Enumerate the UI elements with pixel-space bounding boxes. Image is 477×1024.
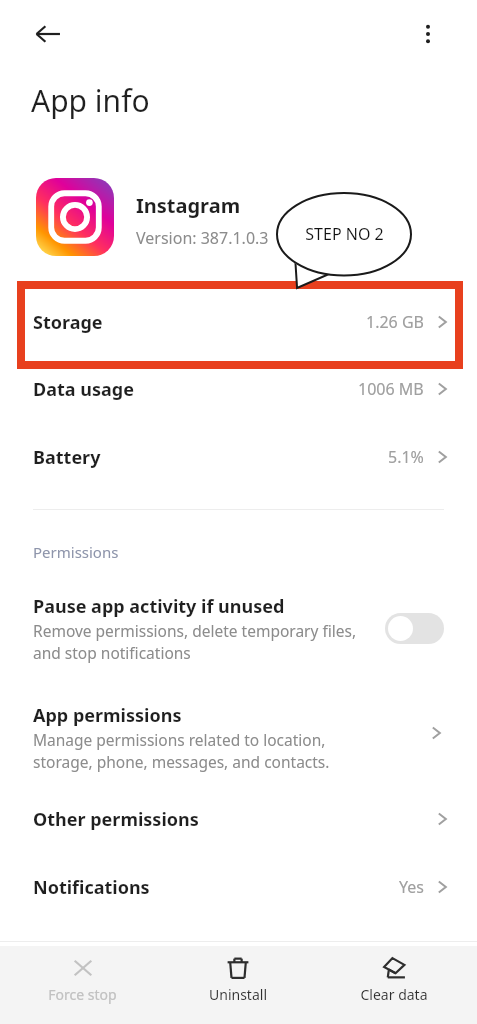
staticText: Force stop <box>48 985 117 1004</box>
staticText: App permissions <box>33 703 182 728</box>
staticText: 5.1% <box>388 446 424 468</box>
staticText: storage, phone, messages, and contacts. <box>33 751 330 772</box>
button[interactable]: Clear data <box>324 946 464 1024</box>
staticText: Manage permissions related to location, <box>33 729 326 750</box>
button[interactable]: Other permissions <box>0 794 477 844</box>
staticText: Yes <box>399 876 424 898</box>
staticText: STEP NO 2 <box>305 223 384 245</box>
staticText: Instagram <box>136 192 241 219</box>
staticText: Data usage <box>33 377 134 402</box>
button[interactable]: Pause app activity if unused <box>0 590 477 670</box>
button[interactable]: Uninstall <box>168 946 308 1024</box>
button[interactable]: App permissions <box>0 700 477 784</box>
staticText: Version: 387.1.0.3 <box>136 227 269 249</box>
button[interactable]: Storage <box>0 297 477 347</box>
staticText: Remove permissions, delete temporary fil… <box>33 620 357 641</box>
staticText: Storage <box>33 310 103 335</box>
button[interactable]: Notifications <box>0 862 477 912</box>
button[interactable]: Pause app activity toggle <box>385 613 444 644</box>
staticText: Notifications <box>33 875 150 900</box>
staticText: Permissions <box>33 542 119 562</box>
staticText: Uninstall <box>209 985 267 1004</box>
staticText: 1.26 GB <box>366 311 424 333</box>
staticText: and stop notifications <box>33 642 191 663</box>
staticText: Pause app activity if unused <box>33 594 285 619</box>
button[interactable]: Force stop <box>12 946 152 1024</box>
button[interactable]: Back <box>26 12 70 56</box>
button[interactable]: Battery <box>0 432 477 482</box>
staticText: 1006 MB <box>358 378 424 400</box>
button[interactable]: Data usage <box>0 364 477 414</box>
button[interactable]: More options <box>406 12 450 56</box>
staticText: App info <box>31 80 150 121</box>
staticText: Battery <box>33 445 101 470</box>
staticText: Other permissions <box>33 807 199 832</box>
staticText: Clear data <box>360 985 428 1004</box>
